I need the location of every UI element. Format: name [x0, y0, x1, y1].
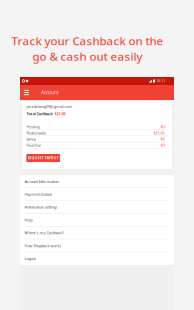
staticText: Account: [41, 89, 59, 96]
staticText: Help: [24, 217, 32, 223]
staticText: go & cash out easily: [32, 49, 142, 64]
staticText: $21.00: [153, 130, 164, 136]
button[interactable]: Where's my Cashback?: [20, 226, 174, 239]
staticText: Bonus: [26, 137, 36, 142]
button[interactable]: Logout: [20, 252, 174, 265]
staticText: Logout: [24, 256, 35, 261]
staticText: Pending: [26, 124, 39, 129]
staticText: How Shopback works: [24, 243, 61, 248]
staticText: Where's my Cashback?: [24, 230, 64, 235]
staticText: Total Cashback: [26, 111, 52, 116]
staticText: REQUEST PAYOUT: [28, 156, 59, 160]
staticText: jaredzhang09@gmail.com: [26, 104, 72, 109]
button[interactable]: Help: [20, 214, 174, 226]
button[interactable]: Menu: [21, 85, 32, 100]
button[interactable]: Account Information: [20, 175, 174, 188]
staticText: $21.00: [55, 111, 66, 116]
button[interactable]: How Shopback works: [20, 239, 174, 252]
staticText: 10:11: [156, 79, 165, 83]
button[interactable]: Payment Details: [20, 188, 174, 201]
staticText: $0: [160, 143, 164, 148]
staticText: $0: [160, 124, 164, 129]
button[interactable]: REQUEST PAYOUT: [26, 154, 60, 162]
staticText: Notification Settings: [24, 204, 57, 210]
button[interactable]: Notification Settings: [20, 201, 174, 213]
staticText: Paid Out: [26, 143, 40, 148]
staticText: Redeemable: [26, 130, 46, 136]
staticText: Track your Cashback on the: [11, 33, 163, 49]
staticText: Payment Details: [24, 192, 52, 197]
staticText: $0: [160, 137, 164, 142]
staticText: Account Information: [24, 179, 58, 184]
